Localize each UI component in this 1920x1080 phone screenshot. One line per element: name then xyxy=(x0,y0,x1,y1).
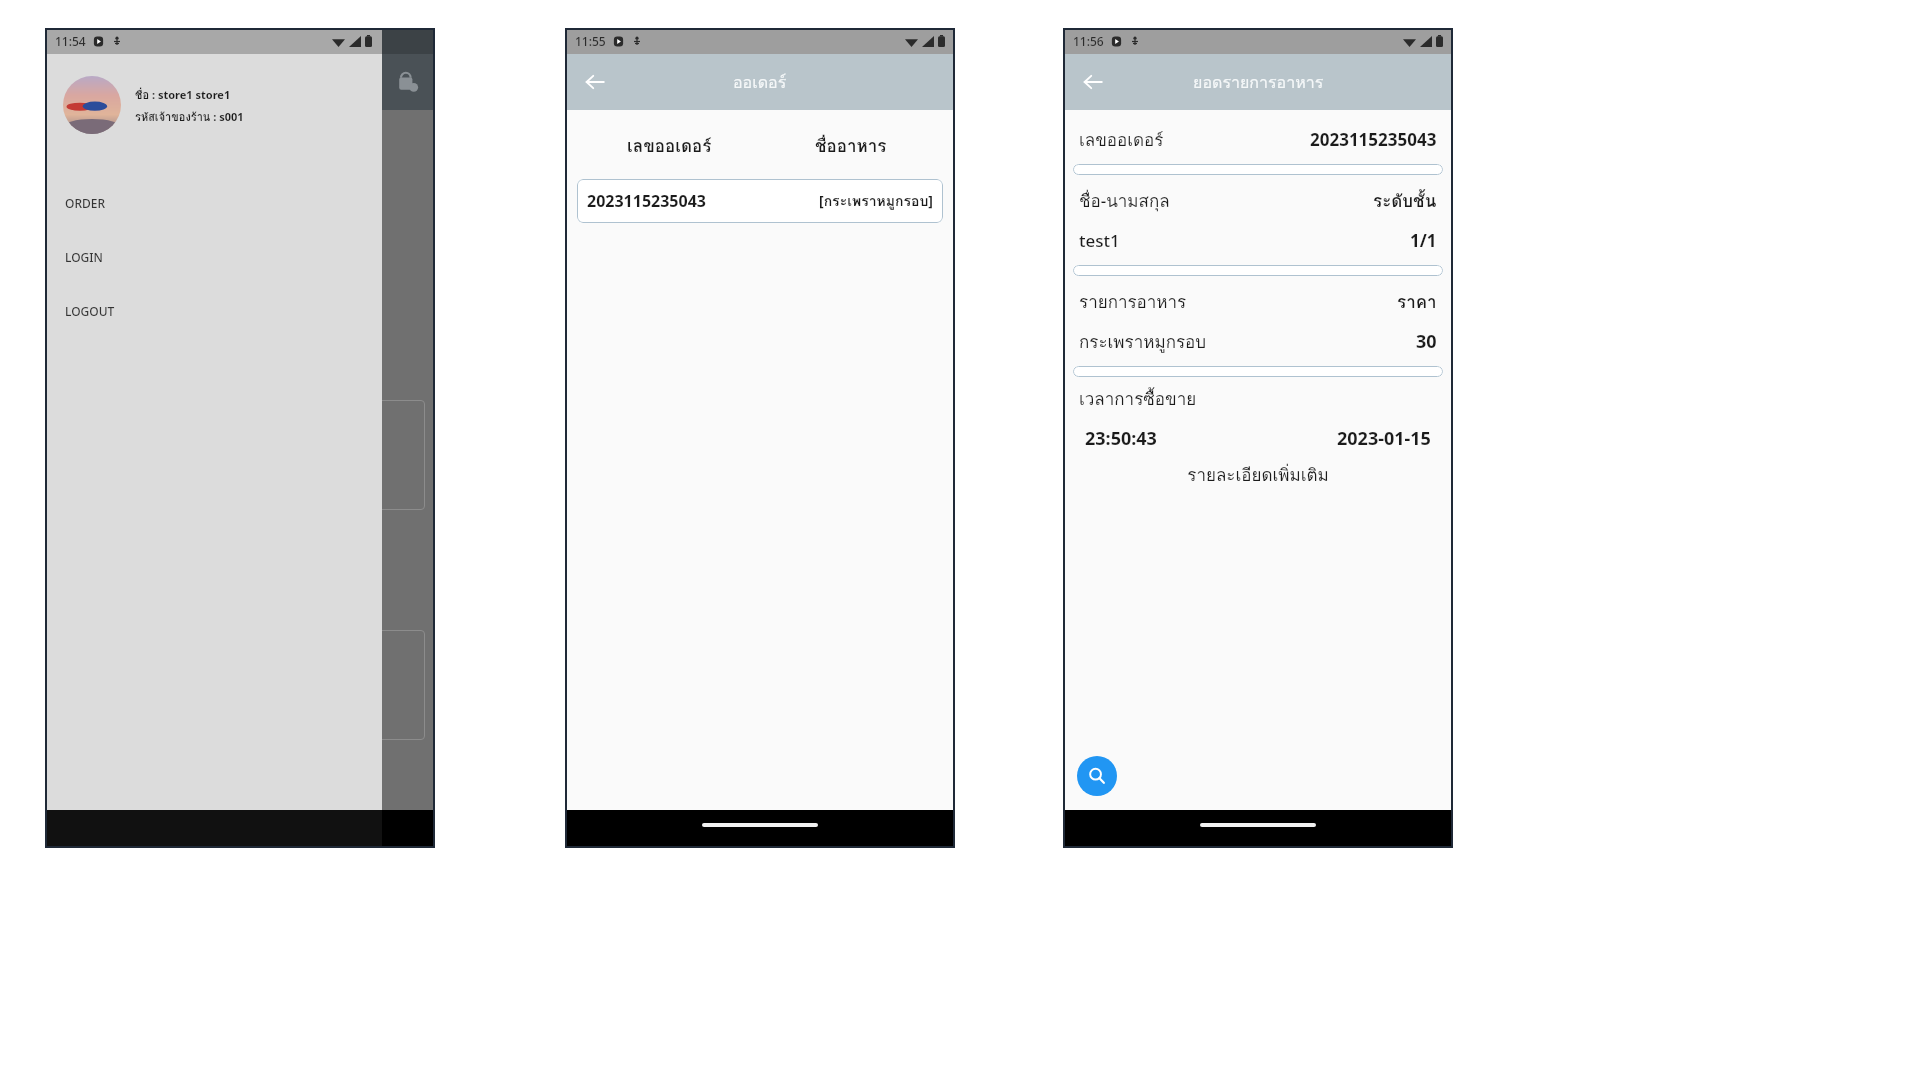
staticText: LOGOUT xyxy=(65,303,115,319)
button[interactable]: 2023115235043 xyxy=(577,179,943,223)
staticText: LOGIN xyxy=(65,249,103,265)
button[interactable]: LOGOUT xyxy=(45,284,382,338)
staticText: เลขออเดอร์ xyxy=(627,132,712,159)
staticText: ชื่อ : store1 store1 xyxy=(135,86,231,103)
staticText: ORDER xyxy=(65,195,106,211)
staticText: [กระเพราหมูกรอบ] xyxy=(819,190,933,212)
staticText: กระเพราหมูกรอบ xyxy=(1079,328,1207,355)
staticText: 11:56 xyxy=(1073,33,1104,49)
button[interactable]: Back xyxy=(1071,60,1115,104)
staticText: ออเดอร์ xyxy=(733,70,787,95)
button[interactable]: LOGIN xyxy=(45,230,382,284)
button[interactable]: รายละเอียดเพิ่มเติม xyxy=(1187,461,1329,488)
staticText: ยอดรายการอาหาร xyxy=(1193,70,1324,95)
staticText: 23:50:43 xyxy=(1085,426,1157,451)
staticText: รายการอาหาร xyxy=(1079,288,1187,315)
staticText: เวลาการซื้อขาย xyxy=(1079,385,1197,412)
staticText: ระดับชั้น xyxy=(1373,187,1437,214)
staticText: ราคา xyxy=(1397,288,1437,315)
staticText: 2023115235043 xyxy=(1310,128,1437,151)
staticText: 11:55 xyxy=(575,33,606,49)
staticText: 1/1 xyxy=(1410,229,1437,252)
staticText: ชื่ออาหาร xyxy=(815,132,887,159)
staticText: test1 xyxy=(1079,229,1120,252)
button[interactable]: ORDER xyxy=(45,176,382,230)
staticText: รหัสเจ้าของร้าน : s001 xyxy=(135,108,244,125)
staticText: เลขออเดอร์ xyxy=(1079,126,1164,153)
button[interactable]: Search xyxy=(1077,756,1117,796)
staticText: 2023115235043 xyxy=(587,190,706,212)
staticText: 2023-01-15 xyxy=(1337,426,1431,451)
button[interactable]: Back xyxy=(573,60,617,104)
staticText: ชื่อ-นามสกุล xyxy=(1079,187,1170,214)
staticText: 11:54 xyxy=(55,33,86,49)
staticText: 30 xyxy=(1416,329,1437,354)
